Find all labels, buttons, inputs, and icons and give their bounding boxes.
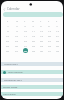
button[interactable]: 8 <box>3 28 12 33</box>
staticText: 29 <box>6 44 9 47</box>
button[interactable]: 27 <box>45 38 53 43</box>
button[interactable]: 37 <box>12 48 21 53</box>
staticText: 37 <box>15 49 18 52</box>
staticText: 33 <box>40 44 43 47</box>
button[interactable]: 3 <box>21 23 29 28</box>
staticText: 4 <box>32 24 34 27</box>
staticText: 38 <box>24 49 27 52</box>
staticText: 19 <box>40 34 43 37</box>
staticText: Design review <box>3 86 18 89</box>
staticText: 20 <box>48 34 51 37</box>
staticText: 22 <box>6 39 9 42</box>
button[interactable]: 39 <box>29 48 37 53</box>
staticText: 42 <box>56 49 59 52</box>
staticText: T <box>40 20 42 23</box>
staticText: 39 <box>32 49 35 52</box>
staticText: 5 <box>40 24 42 27</box>
button[interactable]: Back <box>1 6 7 12</box>
staticText: T <box>24 20 26 23</box>
button[interactable]: 12 <box>37 28 45 33</box>
button[interactable]: 5 <box>37 23 45 28</box>
staticText: 7 <box>56 24 58 27</box>
button[interactable]: 40 <box>37 48 45 53</box>
staticText: 17 <box>24 34 27 37</box>
button[interactable]: 4 <box>29 23 37 28</box>
button[interactable]: 34 <box>45 43 53 48</box>
staticText: 8 <box>7 29 9 32</box>
button[interactable]: 42 <box>53 48 61 53</box>
staticText: 14 <box>56 29 59 32</box>
staticText: W <box>32 20 35 23</box>
staticText: F <box>48 20 50 23</box>
staticText: M <box>16 20 18 23</box>
button[interactable]: 25 <box>29 38 37 43</box>
staticText: 40 <box>40 49 43 52</box>
button[interactable]: 7 <box>53 23 61 28</box>
staticText: 11 <box>32 29 35 32</box>
button[interactable]: 36 <box>3 48 12 53</box>
button[interactable]: 10 <box>21 28 29 33</box>
staticText: Calendar <box>7 7 20 11</box>
button[interactable]: 2 <box>12 23 21 28</box>
button[interactable]: 14 <box>53 28 61 33</box>
staticText: S <box>56 20 58 23</box>
button[interactable]: 11 <box>29 28 37 33</box>
button[interactable]: 22 <box>3 38 12 43</box>
staticText: 9 <box>16 29 18 32</box>
button[interactable]: 38 <box>21 48 29 53</box>
button[interactable]: 24 <box>21 38 29 43</box>
button[interactable]: 9 <box>12 28 21 33</box>
staticText: 32 <box>32 44 35 47</box>
staticText: 12 <box>40 29 43 32</box>
button[interactable]: 32 <box>29 43 37 48</box>
staticText: 18 <box>32 34 35 37</box>
staticText: Team standup <box>8 71 23 74</box>
staticText: August 2024 <box>4 63 18 66</box>
button[interactable]: August 2024 <box>1 62 63 66</box>
button[interactable]: 16 <box>12 33 21 38</box>
button[interactable]: 21 <box>53 33 61 38</box>
staticText: 1 <box>7 24 9 27</box>
button[interactable]: 23 <box>12 38 21 43</box>
button[interactable]: 6 <box>45 23 53 28</box>
button[interactable]: 33 <box>37 43 45 48</box>
staticText: 10 <box>24 29 27 32</box>
staticText: S <box>7 20 9 23</box>
staticText: 30 <box>15 44 18 47</box>
staticText: 13 <box>48 29 51 32</box>
button[interactable]: 13 <box>45 28 53 33</box>
button[interactable]: Lunch break <box>1 92 63 96</box>
staticText: 2 <box>16 24 18 27</box>
button[interactable]: 30 <box>12 43 21 48</box>
button[interactable]: 1 <box>3 23 12 28</box>
button[interactable]: 29 <box>3 43 12 48</box>
staticText: 16 <box>15 34 18 37</box>
staticText: 24 <box>24 39 27 42</box>
button[interactable]: 31 <box>21 43 29 48</box>
staticText: 36 <box>6 49 9 52</box>
button[interactable]: 15 <box>3 33 12 38</box>
button[interactable]: 19 <box>37 33 45 38</box>
staticText: Lunch break <box>3 93 16 96</box>
button[interactable]: Search <box>3 12 63 17</box>
staticText: 15 <box>6 34 9 37</box>
staticText: 27 <box>48 39 51 42</box>
staticText: 23 <box>15 39 18 42</box>
button[interactable]: 17 <box>21 33 29 38</box>
button[interactable]: 20 <box>45 33 53 38</box>
button[interactable]: Team standup <box>1 70 63 74</box>
staticText: 6 <box>48 24 50 27</box>
staticText: 25 <box>32 39 35 42</box>
button[interactable]: 18 <box>29 33 37 38</box>
button[interactable]: Design review <box>1 85 63 89</box>
staticText: September 2024 <box>4 79 22 82</box>
button[interactable]: 26 <box>37 38 45 43</box>
button[interactable]: 41 <box>45 48 53 53</box>
staticText: 34 <box>48 44 51 47</box>
staticText: 3 <box>24 24 26 27</box>
staticText: 21 <box>56 34 59 37</box>
button[interactable]: 28 <box>53 38 61 43</box>
staticText: 41 <box>48 49 51 52</box>
button[interactable]: 35 <box>53 43 61 48</box>
button[interactable]: September 2024 <box>1 78 63 82</box>
